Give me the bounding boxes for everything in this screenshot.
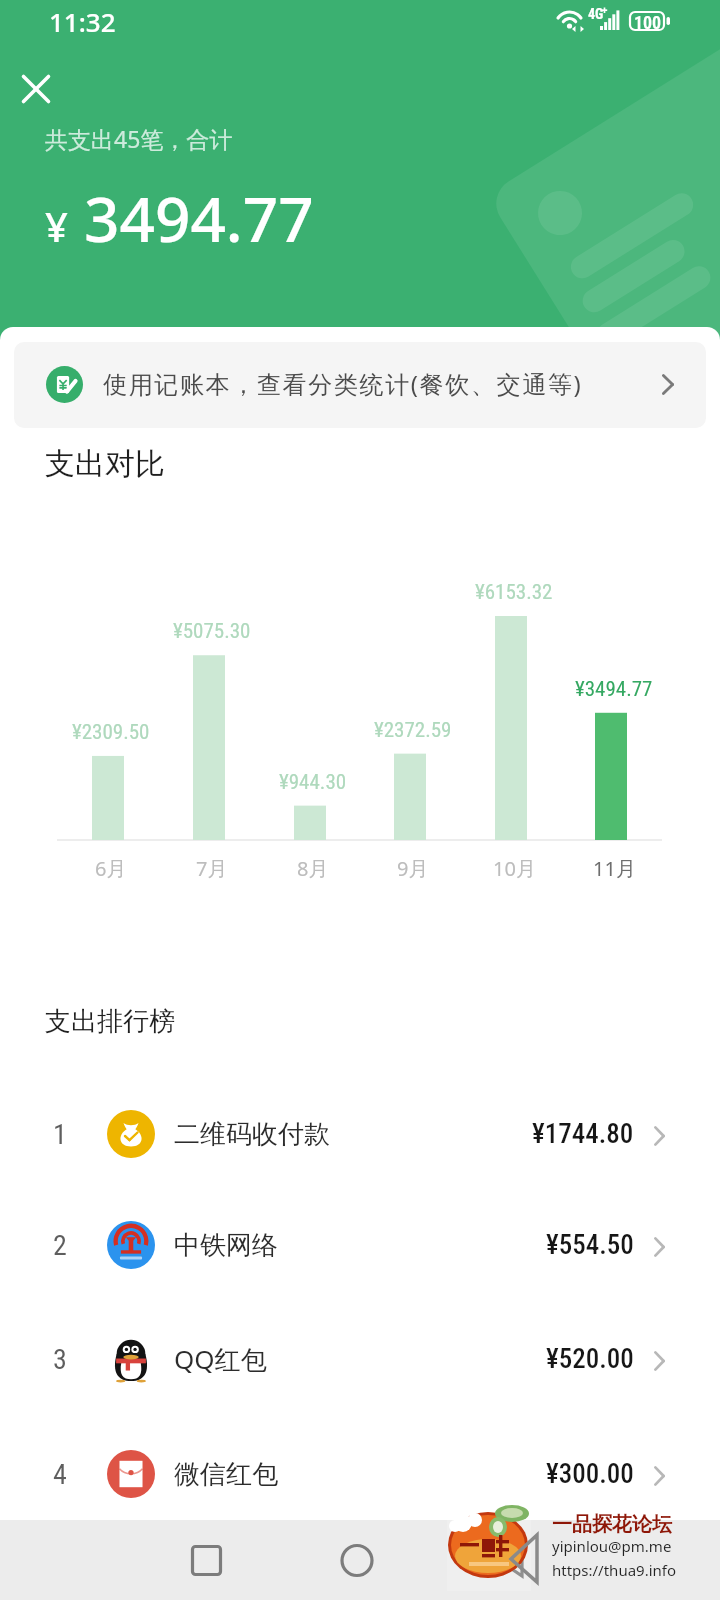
staticText: ¥300.00 [546,1458,634,1490]
staticText: https://thua9.info [552,1560,677,1580]
staticText: ¥1744.80 [532,1118,634,1150]
staticText: 支出排行榜 [45,1005,175,1038]
staticText: ¥5075.30 [173,619,251,644]
staticText: ¥6153.32 [475,580,553,605]
staticText: 6月 [95,855,127,882]
staticText: 11:32 [49,4,116,39]
staticText: 8月 [297,855,329,882]
staticText: 支出对比 [45,445,165,483]
staticText: ¥944.30 [279,770,347,795]
button[interactable]: 1 [0,1087,720,1181]
staticText: ¥554.50 [546,1229,634,1261]
staticText: yipinlou@pm.me [552,1536,672,1556]
button[interactable]: Close [12,65,60,113]
staticText: 中铁网络 [174,1229,278,1262]
staticText: 3 [53,1343,67,1376]
staticText: 10月 [493,855,536,882]
staticText: 9月 [397,855,429,882]
staticText: 二维码收付款 [174,1118,330,1151]
staticText: QQ红包 [174,1341,267,1377]
staticText: 100 [634,12,662,33]
staticText: 1 [53,1118,67,1151]
staticText: 4G [588,6,604,22]
staticText: 2 [53,1229,67,1262]
staticText: 使用记账本，查看分类统计(餐饮、交通等) [103,367,583,400]
button[interactable]: 4 [0,1427,720,1521]
button[interactable]: 3 [0,1312,720,1406]
button[interactable]: Home [312,1520,402,1600]
staticText: ¥3494.77 [575,677,653,702]
button[interactable]: 使用记账本，查看分类统计(餐饮、交通等) [14,342,706,428]
staticText: 11月 [593,855,636,882]
button[interactable]: Recent apps [161,1520,251,1600]
staticText: ¥2372.59 [374,718,452,743]
staticText: 微信红包 [174,1458,278,1491]
button[interactable]: 2 [0,1198,720,1292]
button[interactable]: Back [465,1520,555,1600]
staticText: ¥2309.50 [72,720,150,745]
staticText: 4 [53,1458,67,1491]
staticText: 7月 [196,855,228,882]
staticText: ¥520.00 [546,1343,634,1375]
staticText: 一品探花论坛 [552,1512,672,1537]
staticText: 共支出45笔，合计 [45,123,233,154]
staticText: ¥ 3494.77 [45,176,314,260]
